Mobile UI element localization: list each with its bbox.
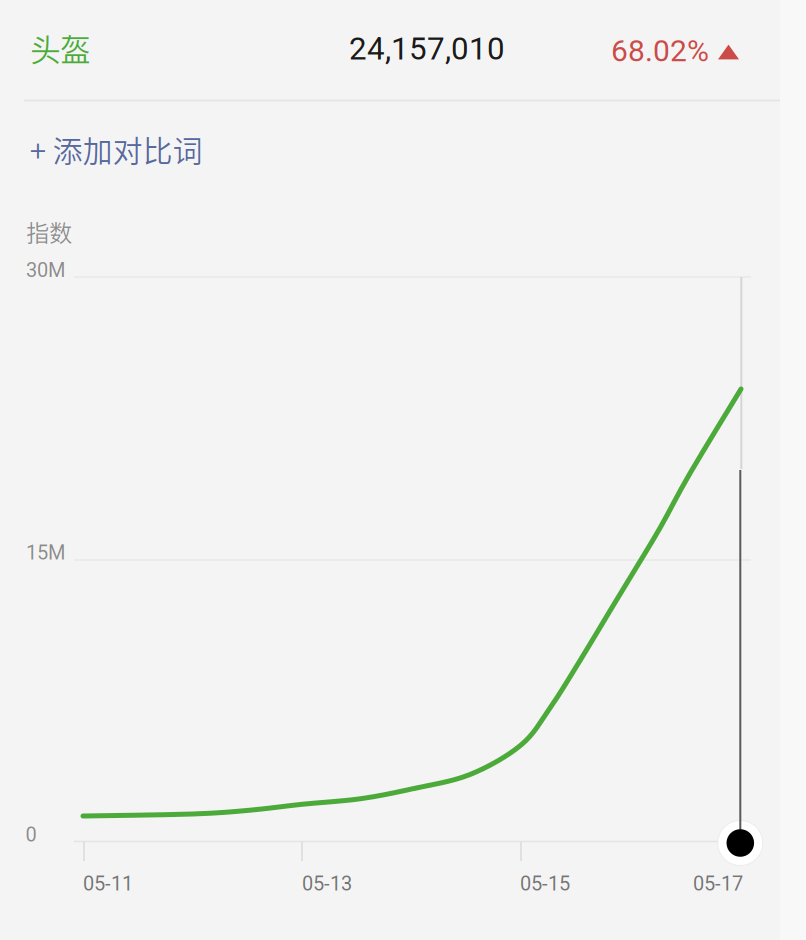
staticText: 0: [25, 823, 36, 846]
staticText: 15M: [26, 541, 65, 564]
button[interactable]: + 添加对比词: [14, 111, 227, 193]
staticText: 05-15: [520, 872, 570, 895]
button[interactable]: 头盔: [16, 12, 104, 88]
staticText: 05-11: [83, 872, 133, 895]
staticText: 05-13: [302, 872, 352, 895]
staticText: 24,157,010: [349, 30, 505, 67]
staticText: 68.02%: [611, 33, 709, 69]
staticText: 05-17: [693, 872, 743, 895]
staticText: + 添加对比词: [30, 127, 203, 171]
staticText: 30M: [26, 258, 65, 282]
staticText: 指数: [26, 215, 72, 248]
staticText: 头盔: [30, 26, 90, 70]
